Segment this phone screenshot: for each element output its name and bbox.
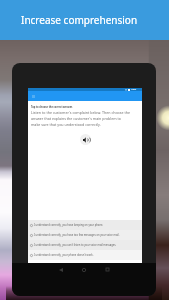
button[interactable]: Back [54, 263, 68, 276]
staticText: I understand correctly, your phone doesn… [34, 253, 94, 257]
staticText: Increase comprehension [21, 13, 138, 27]
staticText: Tap to choose the correct answer. [31, 105, 73, 108]
staticText: I understand correctly, you can't listen… [34, 243, 117, 247]
button[interactable]: I understand correctly, you can't listen… [28, 240, 142, 250]
button[interactable]: Home [77, 263, 91, 276]
button[interactable]: I understand correctly, you have beeping… [28, 220, 142, 230]
staticText: I understand correctly, you have too few… [34, 233, 120, 237]
button[interactable]: Increase comprehension [0, 0, 169, 40]
button[interactable]: Recent apps [100, 263, 114, 276]
button[interactable]: Navigation menu [30, 93, 36, 99]
staticText: Listen to the customer's complaint below… [31, 110, 130, 127]
button[interactable]: I understand correctly, your phone doesn… [28, 250, 142, 260]
button[interactable]: I understand correctly, you have too few… [28, 230, 142, 240]
button[interactable]: Play audio [80, 134, 91, 145]
staticText: 12:00 [131, 88, 137, 91]
button[interactable]: Navigation menu [28, 91, 142, 101]
staticText: I understand correctly, you have beeping… [34, 223, 104, 227]
